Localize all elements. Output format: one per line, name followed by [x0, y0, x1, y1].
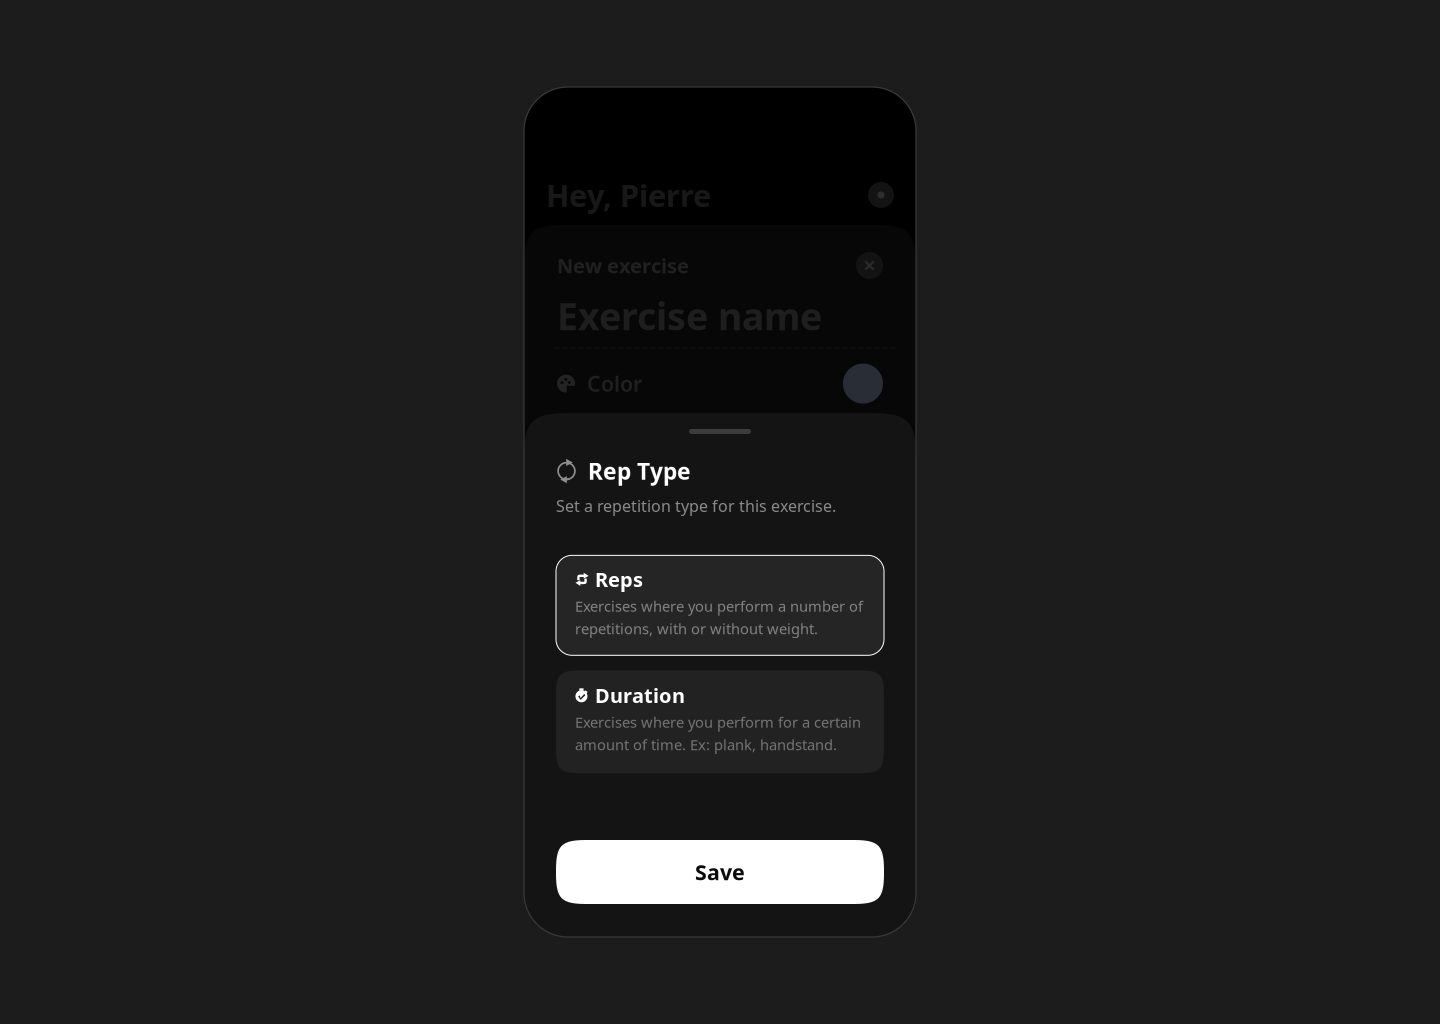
- button[interactable]: Reps: [556, 555, 884, 655]
- staticText: Duration: [595, 682, 685, 709]
- staticText: Exercises where you perform for a certai…: [575, 712, 861, 754]
- staticText: Set a repetition type for this exercise.: [556, 495, 836, 516]
- staticText: Hey, Pierre: [546, 175, 711, 215]
- staticText: Reps: [595, 566, 643, 593]
- button[interactable]: Close: [856, 252, 883, 279]
- staticText: Exercise name: [557, 291, 822, 341]
- staticText: Rep Type: [588, 456, 691, 486]
- button[interactable]: Choose colour: [843, 364, 883, 404]
- button[interactable]: Profile: [868, 182, 894, 208]
- staticText: Color: [587, 369, 642, 398]
- staticText: Exercises where you perform a number of …: [575, 596, 863, 638]
- staticText: Save: [695, 858, 745, 886]
- button[interactable]: Duration: [556, 670, 884, 773]
- staticText: New exercise: [557, 252, 689, 279]
- button[interactable]: Save: [556, 840, 884, 904]
